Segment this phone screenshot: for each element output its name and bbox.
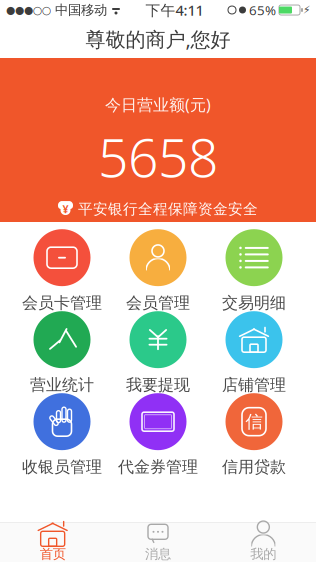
staticText: 今日营业额(元) (105, 94, 211, 115)
staticText: ●●●○○ (6, 4, 51, 16)
staticText: 中国移动 (51, 2, 111, 18)
staticText: 交易明细 (222, 293, 286, 313)
staticText: 信用贷款 (222, 457, 286, 477)
staticText: 信 (245, 411, 262, 432)
staticText: 我要提现 (126, 375, 190, 395)
staticText: 店铺管理 (222, 375, 286, 395)
staticText: ⚡︎ (303, 4, 310, 16)
staticText: 平安银行全程保障资金安全 (78, 200, 258, 218)
button[interactable]: 店铺管理 (206, 312, 302, 394)
button[interactable]: 营业统计 (14, 312, 110, 394)
staticText: 我的 (250, 546, 276, 562)
button[interactable]: 我的 (211, 523, 316, 562)
staticText: 5658 (98, 121, 218, 192)
staticText: 下午4:11 (145, 0, 203, 20)
button[interactable]: 消息 (105, 523, 211, 562)
button[interactable]: 我要提现 (110, 312, 206, 394)
button[interactable]: 收银员管理 (14, 394, 110, 476)
staticText: 代金券管理 (118, 457, 198, 477)
staticText: 会员管理 (126, 293, 190, 313)
button[interactable]: 信 (206, 394, 302, 476)
staticText: ¥ (62, 202, 68, 216)
button[interactable]: 会员管理 (110, 230, 206, 312)
button[interactable]: 首页 (0, 523, 105, 562)
staticText (236, 3, 239, 17)
staticText: 首页 (40, 546, 66, 562)
button[interactable]: 会员卡管理 (14, 230, 110, 312)
staticText: 尊敬的商户,您好 (85, 26, 230, 52)
staticText: 65% (246, 1, 279, 19)
staticText: 营业统计 (30, 375, 94, 395)
button[interactable]: 代金券管理 (110, 394, 206, 476)
staticText: 消息 (145, 546, 171, 562)
staticText: 会员卡管理 (22, 293, 102, 313)
staticText: 收银员管理 (22, 457, 102, 477)
button[interactable]: 交易明细 (206, 230, 302, 312)
